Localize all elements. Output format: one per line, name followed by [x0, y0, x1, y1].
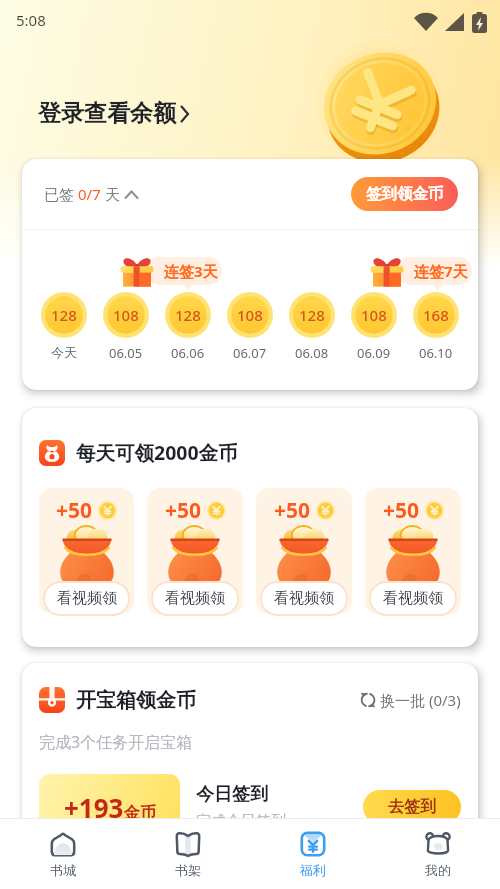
staticText: +50	[56, 496, 93, 525]
staticText: 128	[299, 305, 325, 325]
staticText: 06.07	[233, 344, 267, 362]
staticText: 108	[237, 305, 263, 325]
staticText: 128	[51, 305, 77, 325]
staticText: 登录查看余额	[38, 99, 176, 128]
staticText: +50	[165, 496, 202, 525]
staticText: 我的	[425, 862, 451, 878]
staticText: 天	[101, 184, 124, 204]
button[interactable]: 书城	[0, 819, 125, 889]
staticText: 看视频领	[274, 589, 334, 608]
button[interactable]: 已签	[44, 184, 139, 204]
staticText: 108	[113, 305, 139, 325]
staticText: 128	[175, 305, 201, 325]
button[interactable]: 签到领金币	[351, 177, 458, 211]
button[interactable]: 换一批 (0/3)	[359, 690, 461, 710]
button[interactable]: 128	[281, 292, 343, 362]
staticText: 每天可领2000金币	[76, 439, 238, 466]
button[interactable]: +50	[365, 488, 461, 614]
staticText: 书城	[50, 862, 76, 878]
button[interactable]: 108	[219, 292, 281, 362]
button[interactable]: +50	[256, 488, 352, 614]
staticText: 06.09	[357, 344, 391, 362]
staticText: 已签	[44, 184, 78, 204]
staticText: +50	[383, 496, 420, 525]
staticText: 福利	[300, 862, 326, 878]
staticText: 开宝箱领金币	[76, 688, 196, 713]
staticText: 看视频领	[165, 589, 225, 608]
button[interactable]: 书架	[125, 819, 250, 889]
staticText: 108	[361, 305, 387, 325]
staticText: +193	[64, 790, 124, 825]
staticText: 06.10	[419, 344, 453, 362]
staticText: 0/7	[78, 184, 101, 204]
button[interactable]: 128	[33, 292, 95, 360]
staticText: 连签3天	[164, 261, 218, 281]
staticText: 完成今日签到	[196, 812, 286, 831]
staticText: 看视频领	[57, 589, 117, 608]
staticText: 看视频领	[383, 589, 443, 608]
staticText: +50	[274, 496, 311, 525]
button[interactable]: +50	[147, 488, 243, 614]
staticText: 完成3个任务开启宝箱	[39, 731, 193, 753]
button[interactable]: 福利	[250, 819, 375, 889]
staticText: 06.05	[109, 344, 143, 362]
staticText: 去签到	[388, 797, 436, 817]
staticText: 今天	[51, 344, 77, 360]
staticText: 换一批 (0/3)	[380, 690, 461, 710]
button[interactable]: 108	[343, 292, 405, 362]
button[interactable]: 108	[95, 292, 157, 362]
staticText: 连签7天	[414, 261, 468, 281]
button[interactable]: 168	[405, 292, 467, 362]
staticText: 06.08	[295, 344, 329, 362]
staticText: 5:08	[16, 10, 46, 30]
button[interactable]: 去签到	[363, 790, 461, 824]
button[interactable]: 我的	[375, 819, 500, 889]
staticText: 书架	[175, 862, 201, 878]
button[interactable]: 128	[157, 292, 219, 362]
staticText: 今日签到	[196, 783, 268, 806]
staticText: 签到领金币	[366, 184, 444, 204]
button[interactable]: 登录查看余额	[38, 99, 190, 128]
staticText: 金币	[124, 803, 156, 823]
staticText: 168	[423, 305, 449, 325]
button[interactable]: +50	[39, 488, 134, 614]
staticText: 06.06	[171, 344, 205, 362]
